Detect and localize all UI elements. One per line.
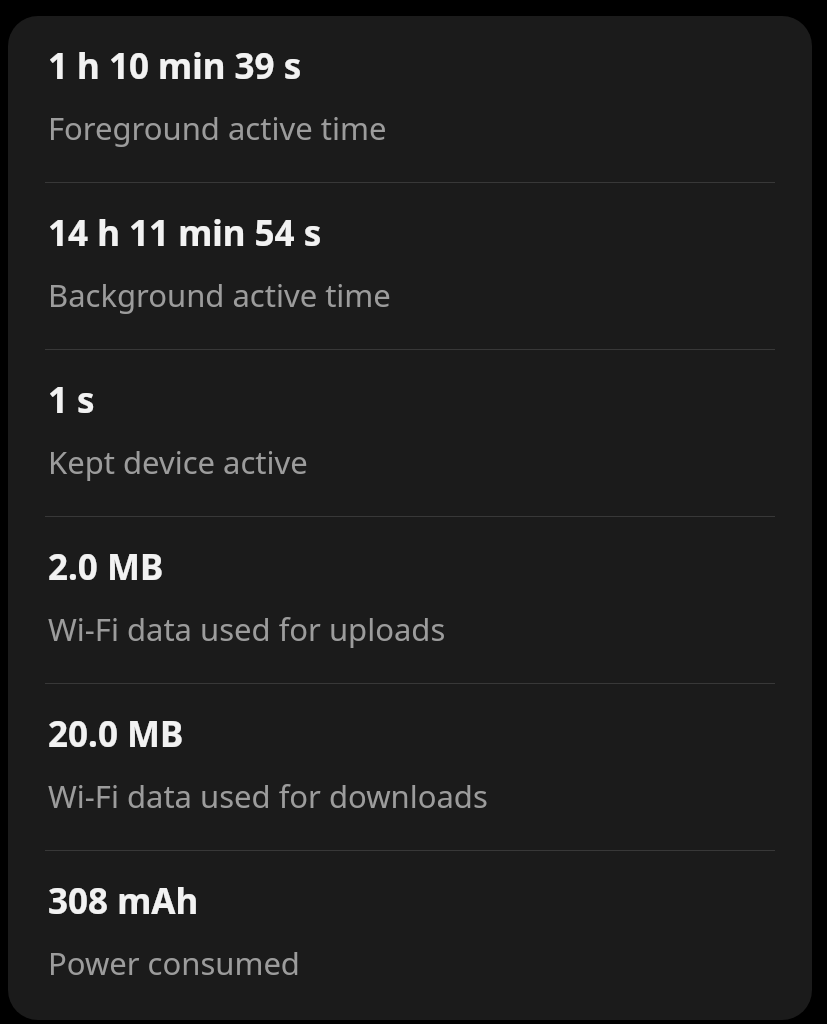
staticText: 308 mAh <box>48 877 199 925</box>
staticText: 14 h 11 min 54 s <box>48 209 322 257</box>
button[interactable]: 14 h 11 min 54 s <box>8 183 812 350</box>
staticText: Kept device active <box>48 441 308 483</box>
staticText: Wi-Fi data used for uploads <box>48 608 446 650</box>
button[interactable]: 308 mAh <box>8 851 812 1018</box>
button[interactable]: 2.0 MB <box>8 517 812 684</box>
button[interactable]: 1 h 10 min 39 s <box>8 16 812 183</box>
staticText: Wi-Fi data used for downloads <box>48 775 488 817</box>
staticText: 1 s <box>48 376 95 424</box>
staticText: 20.0 MB <box>48 710 184 758</box>
button[interactable]: 20.0 MB <box>8 684 812 851</box>
staticText: Power consumed <box>48 942 300 984</box>
staticText: Background active time <box>48 274 391 316</box>
staticText: 2.0 MB <box>48 543 164 591</box>
staticText: 1 h 10 min 39 s <box>48 42 302 90</box>
button[interactable]: 1 s <box>8 350 812 517</box>
staticText: Foreground active time <box>48 107 387 149</box>
